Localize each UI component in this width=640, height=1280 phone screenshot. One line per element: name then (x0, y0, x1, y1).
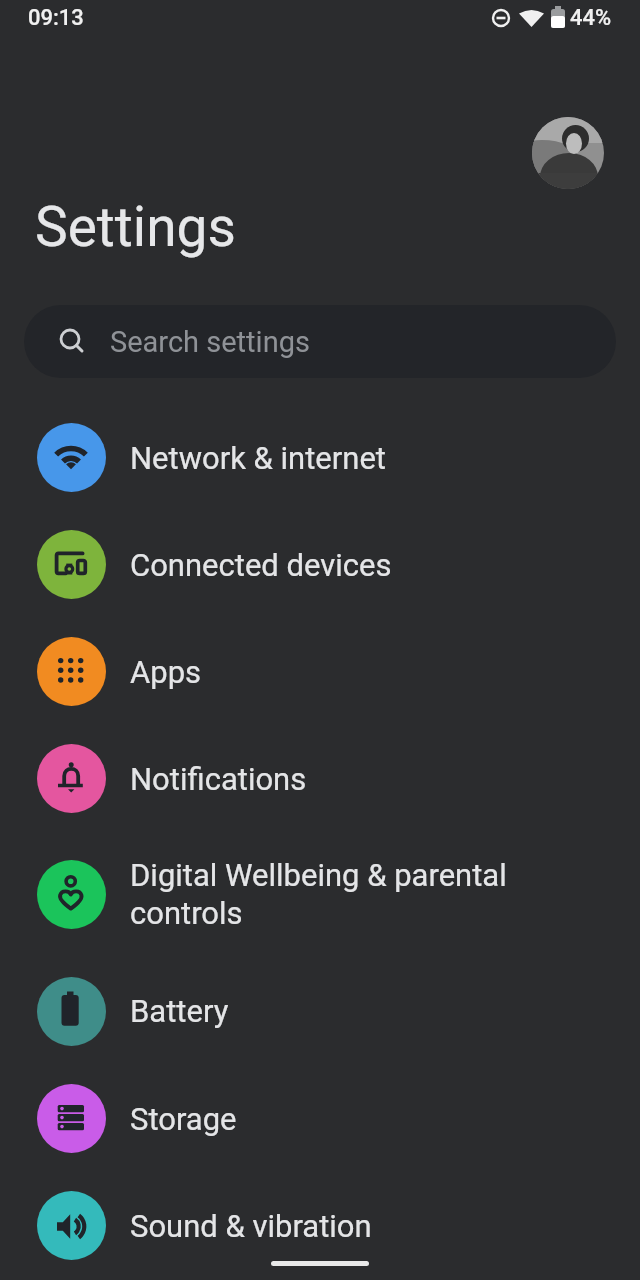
staticText: 09:13 (28, 5, 84, 31)
button[interactable] (532, 117, 604, 189)
staticText: Notifications (130, 761, 307, 797)
staticText: Battery (130, 993, 229, 1029)
button[interactable]: Network & internet (0, 404, 640, 511)
staticText: Settings (35, 195, 236, 259)
button[interactable]: Notifications (0, 725, 640, 832)
button[interactable]: Apps (0, 618, 640, 725)
staticText: Digital Wellbeing & parental controls (130, 857, 507, 932)
staticText: Network & internet (130, 440, 386, 476)
button[interactable]: Digital Wellbeing & parental controls (0, 832, 640, 957)
staticText: Connected devices (130, 547, 392, 583)
button[interactable]: Connected devices (0, 511, 640, 618)
staticText: 44% (570, 5, 612, 31)
button[interactable]: Storage (0, 1065, 640, 1172)
button[interactable]: Battery (0, 957, 640, 1065)
staticText: Storage (130, 1101, 237, 1137)
button[interactable]: Sound & vibration (0, 1172, 640, 1279)
staticText: Apps (130, 654, 202, 690)
staticText: Sound & vibration (130, 1208, 372, 1244)
button[interactable]: Search settings (24, 305, 616, 378)
staticText: Search settings (110, 325, 310, 359)
